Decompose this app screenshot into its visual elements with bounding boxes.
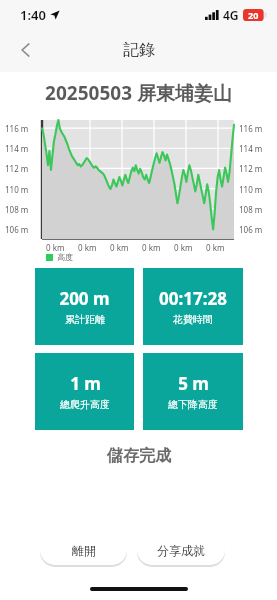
staticText: 離開	[72, 543, 96, 558]
staticText: 分享成就	[157, 543, 205, 558]
staticText: 總爬升高度	[60, 398, 110, 411]
staticText: 儲存完成	[107, 446, 171, 466]
staticText: 116 m	[239, 123, 263, 134]
staticText: 200 m	[59, 287, 110, 310]
staticText: 108 m	[5, 204, 29, 215]
staticText: 108 m	[239, 204, 263, 215]
staticText: 花費時間	[173, 313, 213, 326]
staticText: 20	[248, 9, 259, 21]
staticText: 1 m	[70, 372, 101, 395]
staticText: 總下降高度	[168, 398, 218, 411]
staticText: 20250503 屏東埔姜山	[45, 80, 232, 106]
staticText: 累計距離	[65, 313, 105, 326]
staticText: 106 m	[5, 224, 29, 235]
staticText: 高度	[57, 252, 73, 262]
button[interactable]: 00:17:28	[143, 268, 243, 345]
staticText: 110 m	[239, 184, 263, 195]
staticText: 0 km	[174, 242, 193, 253]
staticText: 0 km	[46, 242, 65, 253]
staticText: 4G	[223, 7, 239, 23]
staticText: 00:17:28	[159, 287, 227, 310]
staticText: 記錄	[123, 40, 155, 60]
staticText: 114 m	[239, 143, 263, 154]
staticText: 114 m	[5, 143, 29, 154]
staticText: 1:40	[20, 6, 46, 24]
staticText: 0 km	[142, 242, 161, 253]
staticText: 112 m	[239, 163, 263, 174]
button[interactable]: 200 m	[35, 268, 134, 345]
button[interactable]: 1 m	[35, 353, 134, 430]
staticText: 112 m	[5, 163, 29, 174]
button[interactable]: 離開	[40, 535, 127, 565]
staticText: 0 km	[78, 242, 97, 253]
staticText: 0 km	[110, 242, 129, 253]
button[interactable]: 分享成就	[137, 535, 225, 565]
staticText: 0 km	[206, 242, 225, 253]
staticText: 5 m	[178, 372, 209, 395]
staticText: 106 m	[239, 224, 263, 235]
button[interactable]: Back	[8, 32, 44, 68]
button[interactable]: 5 m	[143, 353, 243, 430]
staticText: 116 m	[5, 123, 29, 134]
staticText: 110 m	[5, 184, 29, 195]
